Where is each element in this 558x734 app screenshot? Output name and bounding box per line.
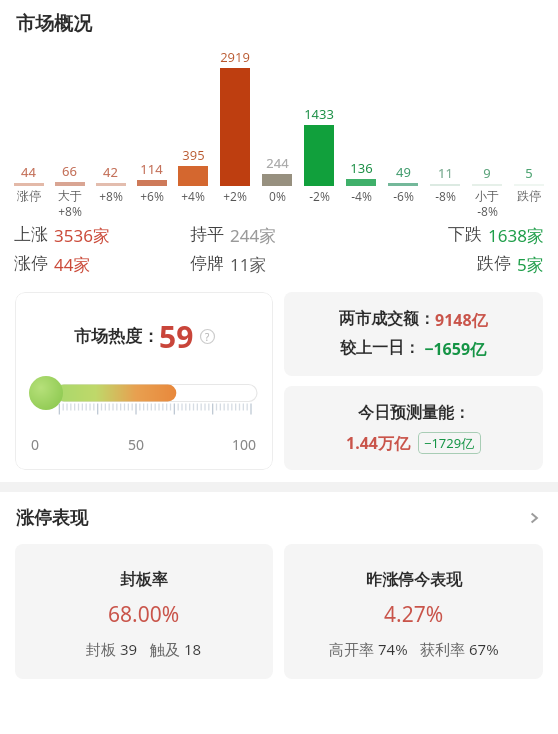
button[interactable]: 涨停表现 [16,492,542,544]
staticText: 50 [128,435,145,454]
staticText: −1659亿 [420,338,487,360]
staticText: 较上一日： [340,338,420,358]
staticText: +8% [58,203,82,219]
button[interactable]: 今日预测量能： [284,386,543,470]
staticText: 上涨 [14,224,48,245]
staticText: 触及 [150,639,184,659]
staticText: 2919 [220,48,250,66]
other: 更多 [526,510,542,526]
staticText: 136 [350,159,373,177]
staticText: 100 [232,435,257,454]
staticText: 昨涨停今表现 [366,570,462,590]
staticText: 今日预测量能： [358,403,470,423]
staticText: −1729亿 [424,434,475,452]
staticText: 11家 [230,253,267,276]
staticText: 42 [103,163,118,181]
staticText: 39 [120,639,138,659]
staticText: 44家 [54,253,91,276]
staticText: 1638家 [488,224,544,247]
button[interactable]: 昨涨停今表现 [284,544,543,679]
staticText: 封板率 [120,570,168,590]
staticText: 高开率 [329,639,378,659]
staticText: 4.27% [384,600,444,629]
button[interactable]: 两市成交额： [284,292,543,376]
button[interactable]: 封板率 [15,544,273,679]
button[interactable]: 帮助 [200,329,215,344]
staticText: 获利率 [420,639,469,659]
staticText: 9148亿 [435,309,488,331]
staticText: 244 [266,154,289,172]
staticText: 市场概况 [16,12,92,36]
staticText: 0 [31,435,40,454]
staticText: 244家 [230,224,277,247]
staticText: 大于 [58,188,82,203]
staticText: +2% [223,188,247,204]
staticText: 66 [62,162,77,180]
staticText: 18 [184,639,202,659]
staticText: 封板 [86,639,120,659]
staticText: 67% [469,639,499,659]
staticText: 49 [396,163,411,181]
staticText: -6% [393,188,414,204]
staticText: 0% [269,188,286,204]
staticText: -2% [309,188,330,204]
staticText: 涨停表现 [16,507,88,530]
staticText: 停牌 [190,253,224,274]
staticText: 44 [21,163,36,181]
staticText: 涨停 [14,253,48,274]
staticText: +8% [99,188,123,204]
staticText: 两市成交额： [339,309,435,329]
staticText: 114 [140,160,163,178]
staticText: 3536家 [54,224,110,247]
staticText: 小于 [475,188,499,203]
staticText: 59 [159,316,194,357]
staticText: 持平 [190,224,224,245]
button[interactable]: 市场热度： [15,292,273,470]
staticText: -8% [477,203,498,219]
staticText: 11 [438,164,453,182]
staticText: ? [205,330,210,344]
staticText: -4% [351,188,372,204]
staticText: 跌停 [517,188,541,203]
staticText: 9 [483,164,491,182]
staticText: 涨停 [17,188,41,203]
staticText: 下跌 [448,224,482,245]
staticText: 1.44万亿 [346,432,410,454]
staticText: 68.00% [108,600,180,629]
staticText: 跌停 [477,253,511,274]
staticText: 市场热度： [74,326,159,347]
staticText: 1433 [304,105,334,123]
staticText: 5家 [517,253,544,276]
staticText: -8% [435,188,456,204]
staticText: +4% [181,188,205,204]
staticText: +6% [140,188,164,204]
staticText: 395 [182,146,205,164]
staticText: 5 [525,164,533,182]
staticText: 74% [378,639,408,659]
